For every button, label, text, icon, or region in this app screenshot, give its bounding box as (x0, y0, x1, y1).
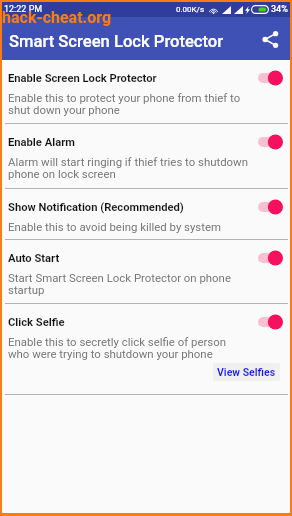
staticText: 12:22 PM (4, 4, 43, 15)
staticText: View Selfies (217, 366, 276, 378)
staticText: Enable this to protect your phone from t… (8, 91, 249, 117)
staticText: Show Notification (Recommended) (8, 201, 184, 214)
button[interactable]: Toggle setting (258, 314, 286, 330)
button[interactable]: Toggle setting (258, 134, 286, 150)
button[interactable]: Enable Screen Lock Protector (2, 60, 290, 123)
button[interactable]: Show Notification (Recommended) (2, 189, 290, 239)
button[interactable]: Toggle setting (258, 250, 286, 266)
button[interactable]: Auto Start (2, 240, 290, 303)
staticText: Enable Alarm (8, 136, 75, 149)
staticText: 0.00K/s (176, 5, 205, 14)
button[interactable]: Toggle setting (258, 70, 286, 86)
staticText: Auto Start (8, 252, 60, 265)
staticText: Enable Screen Lock Protector (8, 72, 157, 85)
button[interactable]: Enable Alarm (2, 124, 290, 188)
staticText: Start Smart Screen Lock Protector on pho… (8, 271, 249, 297)
button[interactable]: Share (255, 24, 285, 54)
staticText: Alarm will start ringing if thief tries … (8, 155, 249, 181)
staticText: Enable this to avoid being killed by sys… (8, 220, 222, 233)
staticText: Enable this to secretly click selfie of … (8, 335, 249, 361)
button[interactable]: View Selfies (213, 363, 280, 381)
staticText: 34% (271, 4, 288, 15)
staticText: Click Selfie (8, 316, 65, 329)
button[interactable]: Toggle setting (258, 199, 286, 215)
staticText: hack-cheat.org (2, 8, 112, 27)
button[interactable]: Click Selfie (2, 304, 290, 394)
staticText: Smart Screen Lock Protector (9, 32, 224, 51)
